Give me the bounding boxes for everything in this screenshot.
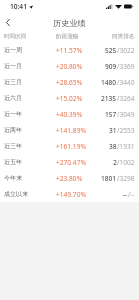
- staticText: 157: [105, 110, 117, 119]
- staticText: 近一月: [4, 62, 22, 70]
- staticText: 10:41: [10, 2, 27, 11]
- button[interactable]: 今年来: [0, 170, 139, 186]
- staticText: 38: [109, 142, 117, 151]
- button[interactable]: Back: [0, 13, 16, 31]
- staticText: /1002: [117, 158, 135, 167]
- staticText: +149.70%: [56, 190, 86, 199]
- button[interactable]: 近三月: [0, 74, 139, 90]
- staticText: 2: [113, 158, 117, 167]
- staticText: /3298: [117, 174, 135, 183]
- staticText: 历史业绩: [53, 18, 86, 28]
- staticText: 909: [105, 62, 117, 71]
- staticText: +270.47%: [56, 158, 86, 167]
- staticText: /3049: [117, 110, 135, 119]
- staticText: /--: [128, 190, 135, 199]
- staticText: 1801: [101, 174, 117, 183]
- staticText: 成立以来: [4, 190, 28, 198]
- staticText: +161.19%: [56, 142, 86, 151]
- staticText: +11.57%: [56, 46, 83, 55]
- staticText: 近一年: [4, 110, 22, 118]
- staticText: +20.80%: [56, 62, 83, 71]
- staticText: 近两年: [4, 126, 22, 134]
- staticText: +141.89%: [56, 126, 86, 135]
- staticText: 近三月: [4, 78, 22, 86]
- button[interactable]: 近五年: [0, 154, 139, 170]
- staticText: --: [123, 190, 128, 199]
- button[interactable]: 成立以来: [0, 186, 139, 202]
- staticText: /3440: [117, 78, 135, 87]
- button[interactable]: 近一周: [0, 42, 139, 58]
- staticText: /2553: [117, 126, 135, 135]
- staticText: +40.39%: [56, 110, 83, 119]
- staticText: 1480: [101, 78, 117, 87]
- staticText: /1931: [117, 142, 135, 151]
- staticText: 同类排名: [112, 33, 135, 40]
- staticText: 2135: [101, 94, 117, 103]
- staticText: 近五年: [4, 158, 22, 166]
- staticText: /3369: [117, 62, 135, 71]
- staticText: 525: [105, 46, 117, 55]
- button[interactable]: 近六月: [0, 90, 139, 106]
- staticText: 时间区间: [4, 33, 27, 40]
- button[interactable]: 近一月: [0, 58, 139, 74]
- staticText: 阶段涨幅: [56, 33, 79, 40]
- staticText: 今年来: [4, 174, 22, 182]
- staticText: 近三年: [4, 142, 22, 150]
- button[interactable]: 近三年: [0, 138, 139, 154]
- staticText: 近一周: [4, 46, 22, 54]
- staticText: +23.80%: [56, 174, 83, 183]
- staticText: +15.02%: [56, 94, 83, 103]
- staticText: 31: [109, 126, 117, 135]
- button[interactable]: 近一年: [0, 106, 139, 122]
- button[interactable]: 近两年: [0, 122, 139, 138]
- staticText: /3022: [117, 46, 135, 55]
- staticText: /3264: [117, 94, 135, 103]
- staticText: +28.65%: [56, 78, 83, 87]
- staticText: 近六月: [4, 94, 22, 102]
